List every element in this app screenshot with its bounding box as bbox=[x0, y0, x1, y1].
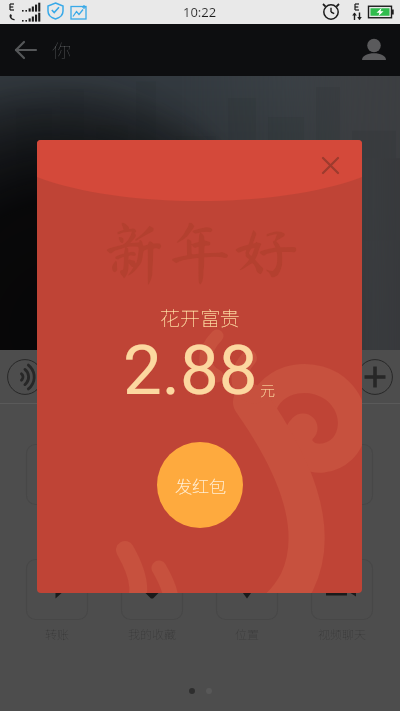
staticText: 2.88 bbox=[123, 330, 258, 411]
staticText: 花开富贵 bbox=[160, 303, 240, 332]
button[interactable]: Voice message bbox=[7, 359, 43, 395]
staticText: 我的收藏 bbox=[128, 625, 177, 642]
staticText: 视频通话 bbox=[223, 510, 272, 527]
button[interactable]: 红包 bbox=[311, 444, 373, 527]
button[interactable]: 位置 bbox=[216, 559, 278, 642]
button[interactable]: 拍摄 bbox=[121, 444, 183, 527]
staticText: 位置 bbox=[235, 625, 260, 642]
button[interactable]: Profile bbox=[348, 24, 400, 76]
staticText: 10:22 bbox=[183, 3, 217, 21]
button[interactable]: 发红包 bbox=[157, 442, 243, 528]
staticText: 转账 bbox=[45, 625, 70, 642]
button[interactable]: 相册 bbox=[26, 444, 88, 527]
staticText: 新年好 bbox=[101, 219, 299, 285]
button[interactable]: 视频聊天 bbox=[311, 559, 373, 642]
staticText: 视频聊天 bbox=[318, 625, 367, 642]
button[interactable]: More options bbox=[357, 359, 393, 395]
button[interactable]: 转账 bbox=[26, 559, 88, 642]
button[interactable]: 我的收藏 bbox=[121, 559, 183, 642]
staticText: 发红包 bbox=[175, 473, 226, 498]
button[interactable]: Close bbox=[310, 145, 351, 186]
staticText: 元 bbox=[260, 379, 276, 401]
button[interactable]: 视频通话 bbox=[216, 444, 278, 527]
button[interactable]: Back bbox=[0, 24, 52, 76]
staticText: 你 bbox=[52, 36, 72, 64]
